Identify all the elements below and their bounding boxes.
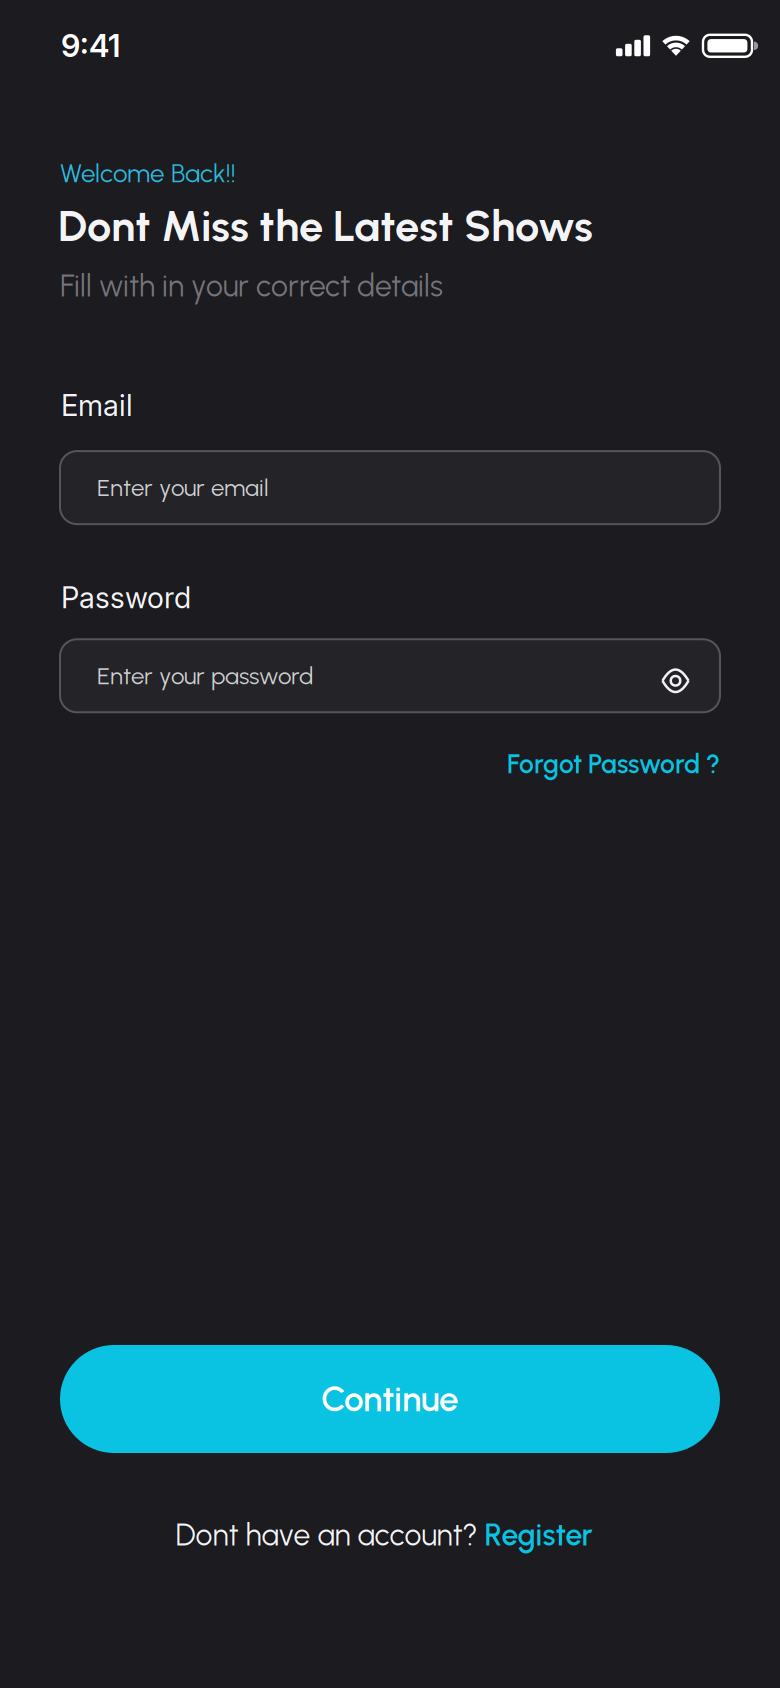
- staticText: Dont Miss the Latest Shows: [58, 200, 593, 252]
- staticText: Dont have an account?: [175, 1517, 484, 1553]
- button[interactable]: Continue: [60, 1345, 720, 1453]
- staticText: Forgot Password ?: [507, 748, 720, 780]
- staticText: Fill with in your correct details: [60, 268, 443, 304]
- staticText: Enter your password: [97, 661, 313, 690]
- staticText: Register: [484, 1517, 592, 1553]
- staticText: Email: [61, 388, 133, 423]
- staticText: Continue: [321, 1378, 459, 1420]
- staticText: Enter your email: [97, 473, 269, 502]
- staticText: 9:41: [61, 27, 120, 65]
- button[interactable]: Show password: [662, 664, 689, 688]
- staticText: Welcome Back!!: [60, 158, 236, 189]
- button[interactable]: Enter your email: [60, 451, 720, 524]
- button[interactable]: Forgot Password ?: [507, 748, 720, 780]
- button[interactable]: Enter your password: [60, 639, 720, 712]
- button[interactable]: Register: [484, 1517, 592, 1553]
- staticText: Password: [61, 580, 191, 615]
